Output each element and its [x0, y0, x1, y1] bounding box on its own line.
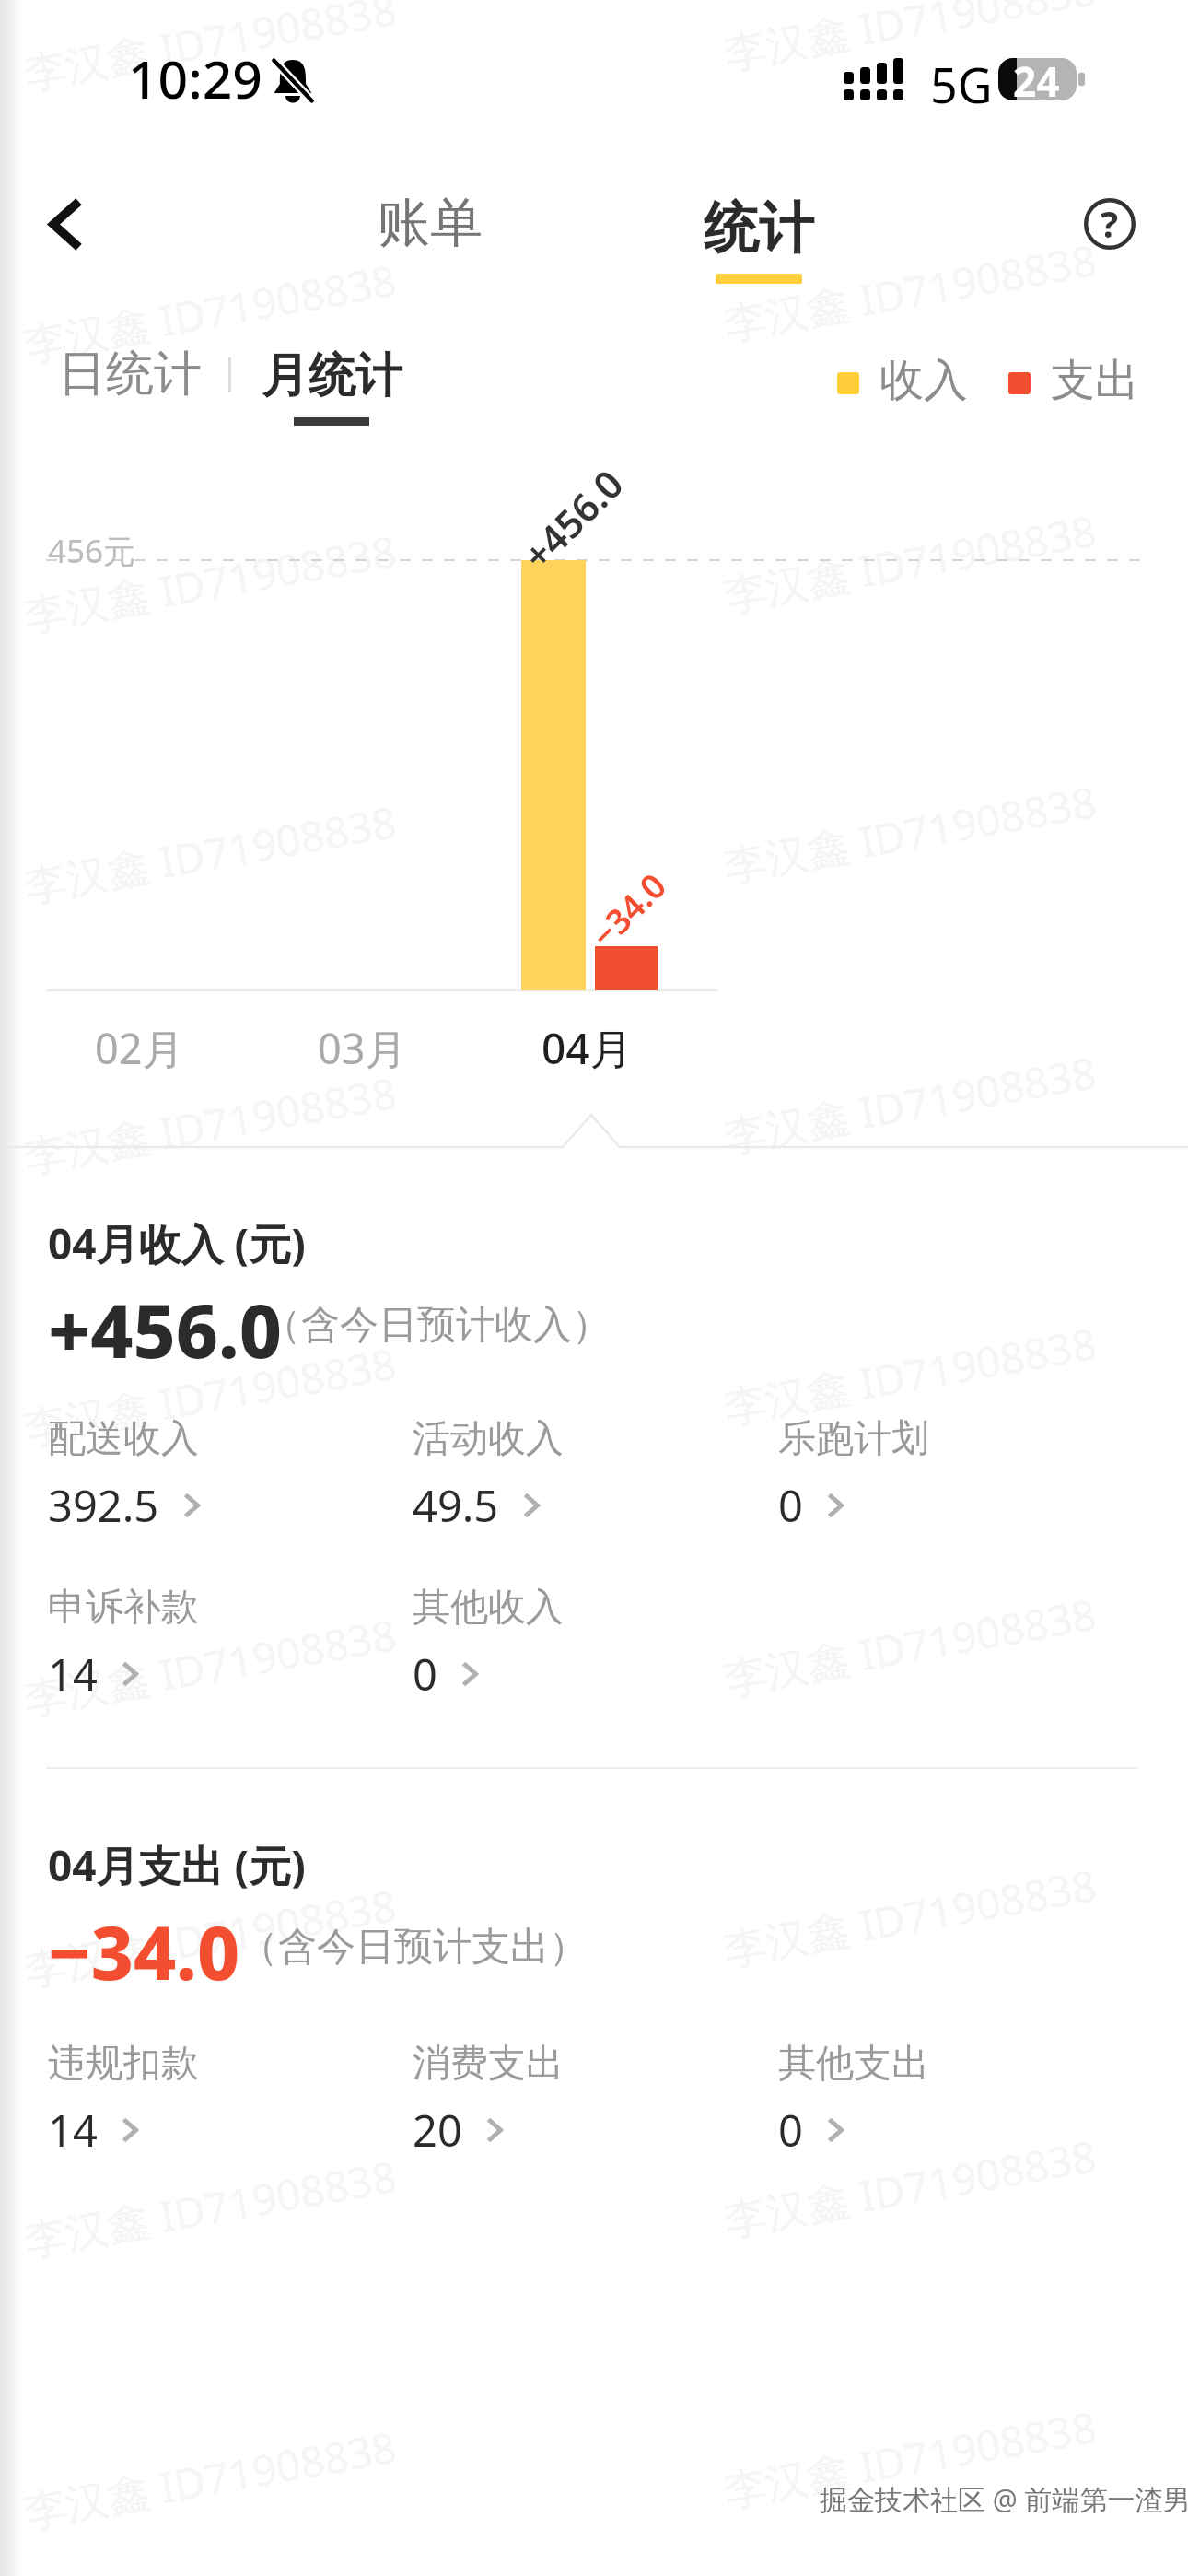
staticText: 14 [48, 2101, 98, 2160]
staticText: 0 [413, 1645, 437, 1704]
staticText: ? [1101, 198, 1119, 248]
staticText: 李汉鑫 ID71908838 [719, 1314, 1101, 1436]
staticText: 乐跑计划 [778, 1415, 929, 1463]
staticText: 收入 [879, 353, 968, 408]
staticText: 其他收入 [413, 1584, 564, 1632]
button[interactable]: 违规扣款 [48, 2040, 398, 2160]
staticText: 24 [1013, 53, 1060, 109]
staticText: 李汉鑫 ID71908838 [19, 521, 401, 644]
button[interactable]: 活动收入 [413, 1415, 763, 1535]
staticText: 李汉鑫 ID71908838 [19, 1876, 401, 1998]
staticText: 14 [48, 1645, 98, 1704]
staticText: 李汉鑫 ID71908838 [719, 501, 1101, 624]
button[interactable]: 消费支出 [413, 2040, 763, 2160]
staticText: 李汉鑫 ID71908838 [19, 1334, 401, 1457]
staticText: 392.5 [48, 1476, 159, 1535]
staticText: 李汉鑫 ID71908838 [19, 1063, 401, 1186]
button[interactable]: 配送收入 [48, 1415, 398, 1535]
staticText: 掘金技术社区 @ 前端第一渣男 [820, 2480, 1188, 2518]
staticText: 0 [778, 2101, 803, 2160]
staticText: （含今日预计支出） [239, 1923, 588, 1972]
button[interactable]: Help [1059, 173, 1160, 275]
button[interactable]: 日统计 [48, 330, 212, 418]
staticText: 日统计 [58, 344, 202, 404]
staticText: 账单 [378, 190, 483, 256]
button[interactable]: 其他支出 [778, 2040, 1128, 2160]
staticText: −34.0 [580, 862, 675, 957]
staticText: 李汉鑫 ID71908838 [19, 0, 401, 102]
button[interactable]: 其他收入 [413, 1584, 763, 1704]
staticText: 02月 [95, 1020, 184, 1076]
staticText: 活动收入 [413, 1415, 564, 1463]
staticText: 李汉鑫 ID71908838 [719, 2397, 1101, 2520]
staticText: 支出 [1051, 353, 1139, 408]
staticText: 04月支出 (元) [48, 1836, 306, 1894]
staticText: 消费支出 [413, 2040, 564, 2088]
staticText: 李汉鑫 ID71908838 [19, 1605, 401, 1728]
staticText: （含今日预计收入） [262, 1301, 611, 1350]
staticText: 03月 [318, 1020, 407, 1076]
staticText: 49.5 [413, 1476, 499, 1535]
staticText: 违规扣款 [48, 2040, 199, 2088]
button[interactable]: 申诉补款 [48, 1584, 398, 1704]
staticText: 配送收入 [48, 1415, 199, 1463]
staticText: 申诉补款 [48, 1584, 199, 1632]
staticText: 李汉鑫 ID71908838 [719, 230, 1101, 353]
staticText: 04月收入 (元) [48, 1214, 306, 1272]
staticText: 统计 [704, 193, 814, 263]
staticText: 5G [930, 52, 993, 117]
button[interactable]: Back [9, 173, 120, 275]
staticText: 456元 [48, 529, 136, 573]
staticText: +456.0 [511, 457, 634, 580]
staticText: 李汉鑫 ID71908838 [719, 0, 1101, 82]
button[interactable]: 账单 [352, 177, 508, 269]
button[interactable]: 乐跑计划 [778, 1415, 1128, 1535]
button[interactable]: 统计 [681, 173, 837, 302]
staticText: 0 [778, 1476, 803, 1535]
staticText: 李汉鑫 ID71908838 [719, 2126, 1101, 2249]
staticText: 月统计 [262, 346, 402, 405]
button[interactable]: 月统计 [250, 327, 413, 442]
staticText: 20 [413, 2101, 462, 2160]
staticText: +456.0 [48, 1279, 282, 1379]
staticText: 李汉鑫 ID71908838 [19, 251, 401, 373]
staticText: −34.0 [48, 1901, 240, 2001]
staticText: 李汉鑫 ID71908838 [719, 1043, 1101, 1166]
staticText: 10:29 [128, 42, 262, 114]
staticText: 其他支出 [778, 2040, 929, 2088]
staticText: 04月 [542, 1019, 633, 1077]
